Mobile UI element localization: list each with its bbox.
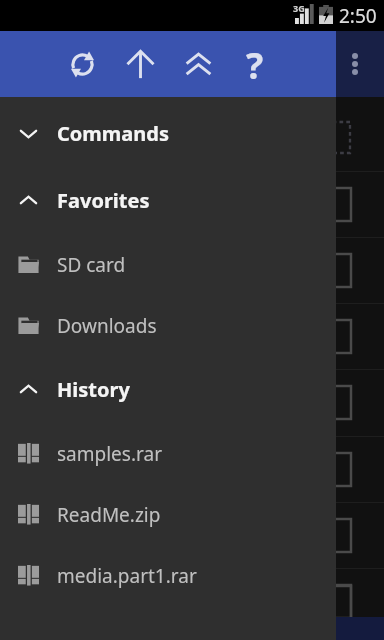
- button[interactable]: Up one level: [117, 41, 163, 87]
- button[interactable]: ReadMe.zip: [0, 484, 336, 545]
- button[interactable]: SD card: [0, 234, 336, 295]
- button[interactable]: Refresh: [59, 41, 105, 87]
- button[interactable]: samples.rar: [0, 423, 336, 484]
- staticText: media.part1.rar: [57, 563, 197, 589]
- staticText: Favorites: [57, 187, 150, 214]
- staticText: History: [57, 376, 130, 403]
- button[interactable]: media.part1.rar: [0, 545, 336, 606]
- button[interactable]: History: [0, 356, 336, 423]
- button[interactable]: Downloads: [0, 295, 336, 356]
- staticText: ?: [246, 41, 264, 87]
- staticText: samples.rar: [57, 441, 162, 467]
- button[interactable]: Favorites: [0, 167, 336, 234]
- button[interactable]: Go to root folder: [175, 41, 221, 87]
- staticText: SD card: [57, 252, 126, 278]
- staticText: Downloads: [57, 313, 157, 339]
- staticText: 2:50: [339, 3, 377, 29]
- button[interactable]: Help: [232, 41, 278, 87]
- staticText: 3G: [293, 2, 305, 14]
- button[interactable]: Commands: [0, 100, 336, 167]
- staticText: ReadMe.zip: [57, 502, 161, 528]
- staticText: Commands: [57, 120, 169, 147]
